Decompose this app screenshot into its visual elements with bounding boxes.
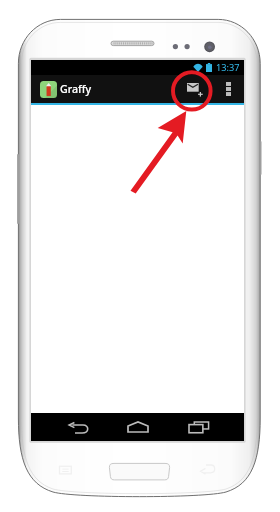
button[interactable]: Home: [115, 413, 161, 441]
staticText: Graffy: [60, 82, 92, 96]
button[interactable]: Back: [56, 413, 102, 441]
button[interactable]: New message: [180, 75, 211, 103]
staticText: 13:37: [216, 61, 240, 74]
button[interactable]: Recent apps: [175, 413, 221, 441]
button[interactable]: More options: [217, 75, 239, 103]
